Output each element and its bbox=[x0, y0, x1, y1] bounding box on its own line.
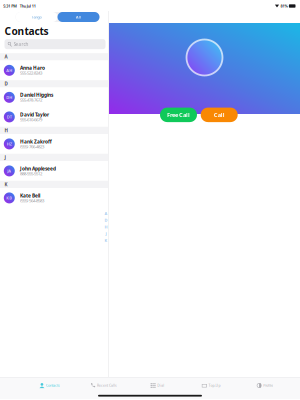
staticText: Tango bbox=[31, 14, 41, 20]
staticText: 555-610-6679 bbox=[20, 117, 42, 122]
button[interactable]: Call bbox=[201, 108, 238, 122]
button[interactable]: HZ bbox=[0, 134, 108, 154]
staticText: KB bbox=[6, 195, 12, 201]
button[interactable]: Tango bbox=[15, 12, 57, 22]
staticText: K bbox=[104, 238, 107, 242]
staticText: Kate Bell bbox=[20, 193, 40, 198]
staticText: Thu Jul 11 bbox=[20, 3, 36, 9]
staticText: (555) 766-4823 bbox=[20, 144, 44, 149]
staticText: Profile bbox=[263, 383, 273, 388]
staticText: H bbox=[104, 225, 107, 229]
staticText: Call bbox=[214, 111, 225, 119]
staticText: 555-522-8243 bbox=[20, 70, 42, 75]
staticText: Search bbox=[13, 41, 28, 47]
button[interactable]: Free Call bbox=[160, 108, 197, 122]
staticText: Recent Calls bbox=[97, 383, 117, 388]
button[interactable]: Contacts bbox=[23, 378, 77, 392]
staticText: 555-478-7672 bbox=[20, 97, 42, 102]
staticText: 81% bbox=[280, 3, 287, 9]
staticText: John Appleseed bbox=[20, 166, 56, 171]
staticText: All bbox=[76, 14, 81, 20]
staticText: Free Call bbox=[167, 111, 190, 119]
staticText: AH bbox=[6, 68, 12, 73]
staticText: Contacts bbox=[46, 383, 60, 388]
staticText: 888-555-5512 bbox=[20, 171, 42, 176]
staticText: Dial bbox=[157, 383, 164, 388]
staticText: Daniel Higgins bbox=[20, 92, 53, 97]
staticText: Contacts bbox=[4, 25, 48, 37]
button[interactable]: Recent Calls bbox=[77, 378, 130, 392]
staticText: HZ bbox=[7, 141, 12, 147]
button[interactable]: Dial bbox=[130, 378, 184, 392]
staticText: D bbox=[4, 81, 7, 87]
button[interactable]: DH bbox=[0, 87, 108, 107]
staticText: 5:31 PM bbox=[3, 3, 17, 9]
button[interactable]: Profile bbox=[238, 378, 292, 392]
staticText: Top-Up bbox=[208, 383, 220, 388]
staticText: (555) 564-8583 bbox=[20, 198, 44, 203]
staticText: DT bbox=[7, 114, 12, 120]
staticText: DH bbox=[6, 95, 12, 100]
button[interactable]: DT bbox=[0, 107, 108, 127]
staticText: A bbox=[4, 54, 7, 60]
button[interactable]: All bbox=[57, 12, 99, 22]
staticText: David Taylor bbox=[20, 112, 49, 117]
button[interactable]: AH bbox=[0, 60, 108, 80]
button[interactable]: Top-Up bbox=[184, 378, 238, 392]
staticText: H bbox=[4, 127, 7, 133]
staticText: J bbox=[4, 154, 6, 160]
staticText: JA bbox=[7, 168, 11, 174]
staticText: K bbox=[4, 181, 7, 187]
staticText: Hank Zakroff bbox=[20, 139, 52, 144]
staticText: A bbox=[104, 211, 107, 215]
staticText: D bbox=[104, 218, 107, 222]
button[interactable]: JA bbox=[0, 161, 108, 181]
staticText: Anna Haro bbox=[20, 65, 45, 70]
button[interactable]: KB bbox=[0, 188, 108, 208]
